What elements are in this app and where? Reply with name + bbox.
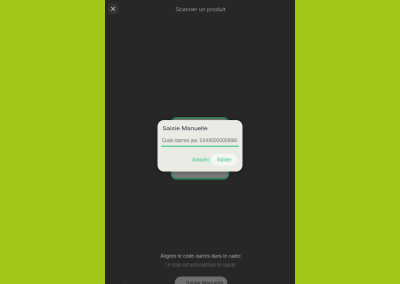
- staticText: Saisie Manuelle: [95, 113, 275, 143]
- staticText: Saisie Manuelle: [130, 271, 279, 284]
- staticText: Valider: [194, 149, 255, 171]
- button[interactable]: Fermer: [107, 3, 119, 14]
- button[interactable]: Valider: [211, 154, 237, 165]
- staticText: Annuler: [166, 149, 235, 171]
- staticText: Code-barres (ex: 5449000000996): [48, 130, 351, 151]
- staticText: Alignez le code-barres dans le cadre: [39, 245, 361, 267]
- button[interactable]: Annuler: [189, 154, 211, 165]
- staticText: Le scan est automatique et rapide: [60, 254, 341, 276]
- staticText: Scanner un produit: [101, 0, 299, 23]
- button[interactable]: Saisie Manuelle: [175, 276, 227, 284]
